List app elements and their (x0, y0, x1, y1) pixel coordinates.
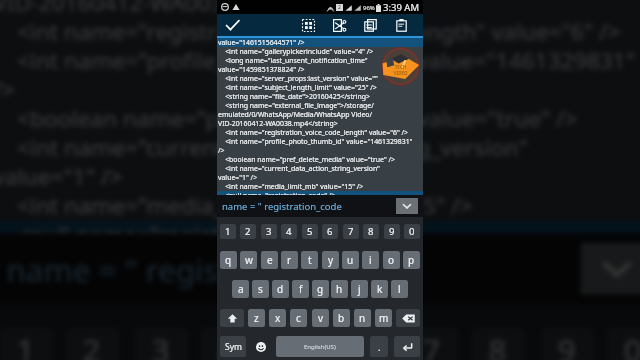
button[interactable]: 3 (135, 327, 188, 360)
button[interactable]: Cut (324, 14, 355, 36)
staticText: value="1461515644571" /> (218, 38, 305, 47)
button[interactable]: 5 (302, 224, 318, 239)
staticText: <int name="media_limit_mb" value="15" /> (218, 182, 364, 191)
button[interactable]: 0 (404, 224, 420, 239)
staticText: 5 (307, 225, 313, 238)
staticText: z (254, 311, 259, 325)
button[interactable]: v (312, 309, 329, 327)
staticText: value="1" /> (0, 162, 125, 191)
button[interactable]: n (354, 309, 371, 327)
button[interactable]: 6 (322, 224, 338, 239)
staticText: 9 (558, 330, 577, 360)
button[interactable]: . (370, 336, 388, 357)
button[interactable]: Emoji (252, 336, 269, 357)
button[interactable]: i (362, 251, 379, 269)
button[interactable]: z (248, 309, 265, 327)
staticText: value="1" /> (218, 173, 258, 182)
staticText: <boolean name="pref_delete_media" value=… (218, 155, 396, 164)
staticText: <boolean name="pref_delete_media" value=… (0, 104, 581, 133)
button[interactable]: l (391, 280, 408, 298)
staticText: 1 (225, 225, 231, 238)
staticText: v (318, 311, 324, 325)
button[interactable]: Shift (220, 309, 244, 327)
staticText: 0 (409, 225, 415, 238)
button[interactable]: English(US) (276, 336, 364, 357)
staticText: h (336, 282, 343, 296)
button[interactable]: 6 (337, 327, 389, 360)
staticText: 4 (218, 330, 238, 360)
staticText: d (277, 282, 284, 296)
staticText: c (296, 311, 301, 325)
staticText: <string name="external_file_image">/stor… (218, 101, 374, 110)
staticText: Sym (225, 341, 242, 353)
button[interactable]: 2 (240, 224, 256, 239)
staticText: n (359, 311, 366, 325)
staticText: 96% (363, 4, 375, 12)
button[interactable]: Sym (220, 336, 246, 357)
button[interactable]: 8 (472, 327, 525, 360)
staticText: name = " registration_code (222, 200, 342, 213)
button[interactable]: o (383, 251, 400, 269)
button[interactable]: Select all (293, 14, 324, 36)
button[interactable]: k (371, 280, 388, 298)
button[interactable]: w (240, 251, 257, 269)
button[interactable]: Backspace (396, 309, 420, 327)
staticText: 7 (422, 330, 442, 360)
button[interactable]: u (342, 251, 359, 269)
button[interactable]: c (290, 309, 307, 327)
button[interactable]: 1 (220, 224, 236, 239)
button[interactable]: 4 (201, 327, 254, 360)
button[interactable]: 7 (343, 224, 359, 239)
button[interactable]: 7 (406, 327, 459, 360)
button[interactable]: g (312, 280, 329, 298)
staticText: 8 (488, 330, 508, 360)
button[interactable]: d (272, 280, 289, 298)
staticText: i (369, 253, 372, 267)
staticText: u (347, 253, 354, 267)
button[interactable]: 1 (0, 327, 53, 360)
button[interactable]: Expand (581, 243, 640, 294)
staticText: y (328, 253, 334, 267)
button[interactable]: Enter (394, 336, 420, 357)
button[interactable]: Copy (355, 14, 386, 36)
button[interactable]: p (403, 251, 420, 269)
button[interactable]: s (252, 280, 269, 298)
staticText: o (388, 253, 395, 267)
button[interactable]: x (269, 309, 286, 327)
button[interactable]: e (261, 251, 278, 269)
button[interactable]: 5 (271, 327, 323, 360)
button[interactable]: f (292, 280, 309, 298)
button[interactable]: h (331, 280, 348, 298)
staticText: <int name="subject_length_limit" value="… (218, 83, 377, 92)
button[interactable]: 3 (261, 224, 277, 239)
staticText: VID-20160412-WA0038.mp4</string> (0, 0, 389, 18)
staticText: VID-20160412-WA0038.mp4</string> (218, 119, 338, 128)
button[interactable]: 4 (281, 224, 297, 239)
staticText: <string name="file_date">20160425</strin… (218, 92, 370, 101)
button[interactable]: Paste (386, 14, 417, 36)
button[interactable]: b (333, 309, 350, 327)
button[interactable]: 2 (66, 327, 119, 360)
staticText: m (379, 311, 389, 325)
button[interactable]: 9 (541, 327, 594, 360)
staticText: <int name="registration_voice_code_lengt… (0, 18, 624, 47)
staticText: <int name="current_data_action_string_ve… (0, 133, 528, 162)
button[interactable]: Expand (396, 198, 418, 214)
button[interactable]: j (351, 280, 368, 298)
button[interactable]: a (232, 280, 249, 298)
staticText: <null name="registration_code" /> (0, 220, 383, 233)
button[interactable]: 0 (607, 327, 640, 360)
button[interactable]: r (281, 251, 298, 269)
staticText: <int name="registration_voice_code_lengt… (218, 128, 409, 137)
button[interactable]: Done (217, 14, 247, 36)
staticText: TECH VIDEO (393, 64, 408, 76)
staticText: 3:39 AM (383, 1, 420, 14)
button[interactable]: t (301, 251, 318, 269)
staticText: 9 (389, 225, 395, 238)
button[interactable]: 9 (384, 224, 400, 239)
button[interactable]: m (375, 309, 392, 327)
button[interactable]: y (322, 251, 339, 269)
staticText: <int name="profile_photo_thumb_id" value… (0, 46, 637, 75)
button[interactable]: 8 (363, 224, 379, 239)
button[interactable]: q (220, 251, 237, 269)
